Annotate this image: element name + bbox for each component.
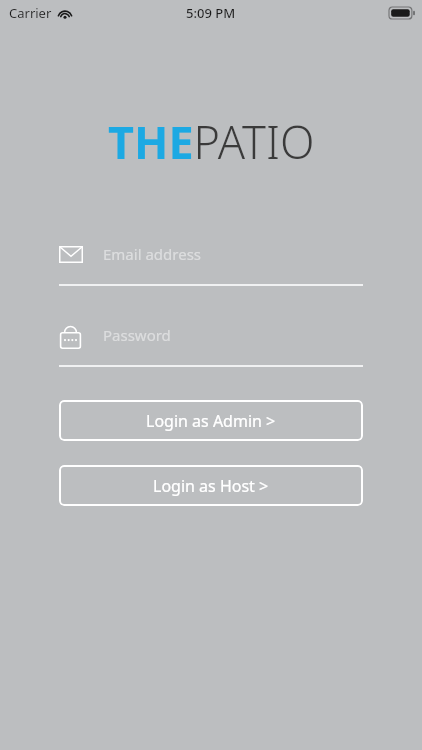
staticText: Password (103, 325, 171, 345)
staticText: Login as Host > (153, 475, 269, 497)
staticText: Login as Admin > (146, 410, 276, 432)
staticText: Carrier (9, 4, 52, 22)
button[interactable]: Email address (59, 236, 363, 286)
staticText: 5:09 PM (186, 4, 236, 22)
button[interactable]: Password (59, 317, 363, 367)
button[interactable]: Login as Host > (59, 465, 363, 506)
staticText: Email address (103, 244, 202, 264)
staticText: THEPATIO (108, 111, 315, 172)
button[interactable]: Login as Admin > (59, 400, 363, 441)
